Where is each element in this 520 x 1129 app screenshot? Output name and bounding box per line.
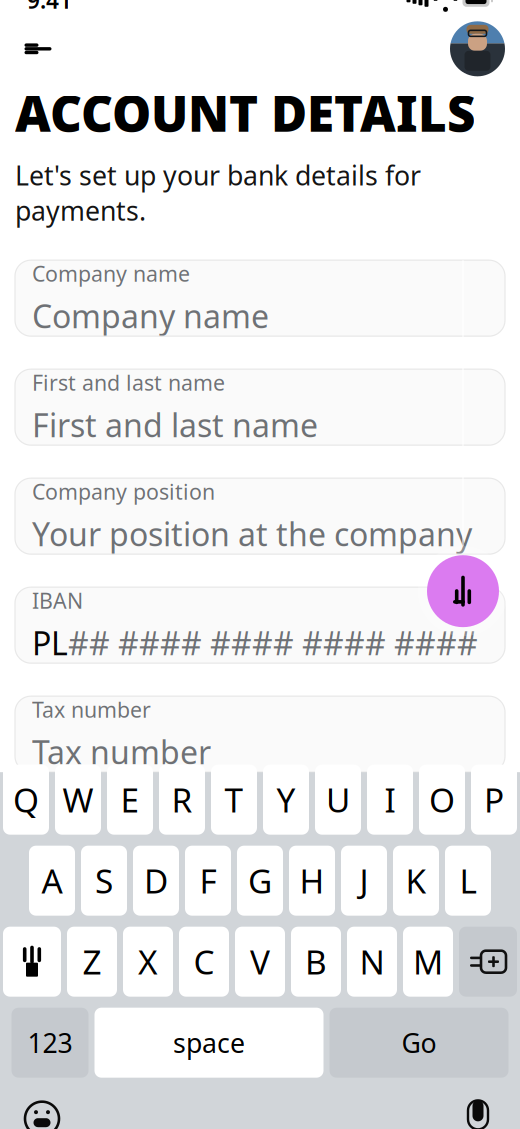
staticText: Y (276, 777, 295, 822)
button[interactable]: Company position (15, 478, 505, 554)
staticText: O (429, 777, 455, 822)
button[interactable]: Q (3, 765, 49, 835)
button[interactable]: M (403, 927, 453, 997)
staticText: First and last name (32, 404, 318, 446)
staticText: space (173, 1025, 245, 1060)
staticText: 9:41 (27, 0, 72, 15)
staticText: Tax number (32, 695, 151, 724)
button[interactable]: Z (67, 927, 117, 997)
button[interactable]: W (55, 765, 101, 835)
staticText: T (224, 777, 243, 822)
staticText: B (305, 939, 327, 984)
button[interactable]: E (107, 765, 153, 835)
button[interactable]: Back (15, 26, 61, 72)
staticText: X (138, 939, 158, 984)
staticText: Q (13, 777, 39, 822)
button[interactable]: Y (263, 765, 309, 835)
button[interactable]: O (419, 765, 465, 835)
button[interactable]: R (159, 765, 205, 835)
staticText: M (413, 939, 443, 984)
button[interactable]: H (289, 846, 335, 916)
button[interactable]: T (211, 765, 257, 835)
staticText: First and last name (32, 368, 225, 397)
button[interactable]: B (291, 927, 341, 997)
staticText: S (95, 858, 113, 903)
button[interactable]: F (185, 846, 231, 916)
button[interactable]: Profile (450, 21, 505, 76)
button[interactable]: C (179, 927, 229, 997)
staticText: ACCOUNT DETAILS (15, 80, 475, 145)
button[interactable]: A (29, 846, 75, 916)
staticText: L (459, 858, 476, 903)
staticText: F (199, 858, 216, 903)
button[interactable]: Delete (459, 927, 517, 997)
button[interactable]: 123 (11, 1008, 88, 1078)
button[interactable]: L (445, 846, 491, 916)
button[interactable]: N (347, 927, 397, 997)
staticText: E (120, 777, 139, 822)
staticText: H (299, 858, 324, 903)
button[interactable]: Submit (418, 546, 508, 636)
staticText: J (359, 858, 368, 903)
staticText: ## #### #### #### #### (68, 622, 478, 664)
button[interactable]: X (123, 927, 173, 997)
staticText: PL (32, 622, 68, 664)
button[interactable]: S (81, 846, 127, 916)
staticText: IBAN (32, 586, 83, 615)
button[interactable]: Emoji (16, 1093, 68, 1129)
button[interactable]: Company name (15, 260, 505, 336)
button[interactable]: Dictation (452, 1093, 504, 1129)
staticText: Company position (32, 477, 215, 506)
button[interactable]: V (235, 927, 285, 997)
button[interactable]: Shift (3, 927, 61, 997)
button[interactable]: IBAN (15, 587, 505, 663)
staticText: V (250, 939, 270, 984)
staticText: A (41, 858, 62, 903)
button[interactable]: I (367, 765, 413, 835)
button[interactable]: G (237, 846, 283, 916)
staticText: I (384, 777, 395, 822)
staticText: Tax number (32, 731, 211, 773)
button[interactable]: P (471, 765, 517, 835)
button[interactable]: First and last name (15, 369, 505, 445)
button[interactable]: Go (329, 1008, 508, 1078)
staticText: W (62, 777, 93, 822)
button[interactable]: D (133, 846, 179, 916)
staticText: D (144, 858, 168, 903)
staticText: 123 (27, 1025, 72, 1060)
staticText: R (171, 777, 192, 822)
staticText: Company name (32, 295, 269, 337)
staticText: G (248, 858, 272, 903)
button[interactable]: Tax number (15, 696, 505, 772)
button[interactable]: J (341, 846, 387, 916)
button[interactable]: space (94, 1008, 323, 1078)
staticText: N (359, 939, 384, 984)
staticText: K (405, 858, 426, 903)
staticText: Go (401, 1025, 436, 1060)
staticText: U (326, 777, 350, 822)
staticText: Company name (32, 259, 190, 288)
staticText: P (484, 777, 504, 822)
button[interactable]: K (393, 846, 439, 916)
staticText: Your position at the company (32, 513, 472, 555)
staticText: C (193, 939, 214, 984)
staticText: Let's set up your bank details for payme… (15, 157, 421, 228)
button[interactable]: U (315, 765, 361, 835)
staticText: Z (82, 939, 101, 984)
